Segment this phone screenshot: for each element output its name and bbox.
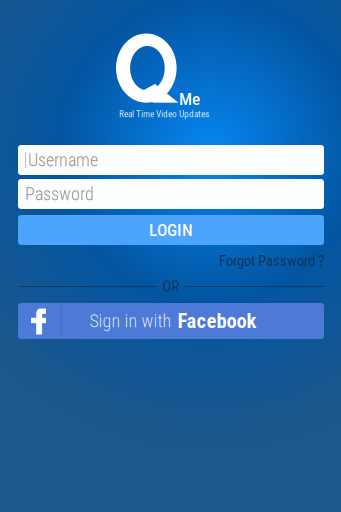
staticText: Real Time Video Updates <box>119 108 209 119</box>
staticText: OR <box>162 278 179 295</box>
staticText: Forgot Password ? <box>219 252 324 270</box>
button[interactable]: Forgot Password ? <box>18 253 324 269</box>
staticText: Username <box>28 149 98 171</box>
staticText: Password <box>25 183 94 205</box>
button[interactable]: Sign in with Facebook <box>18 303 324 339</box>
staticText: LOGIN <box>149 220 193 240</box>
staticText: Sign in with <box>89 310 171 332</box>
staticText: Facebook <box>177 309 256 333</box>
staticText: Me <box>179 89 200 109</box>
button[interactable]: LOGIN <box>18 215 324 245</box>
